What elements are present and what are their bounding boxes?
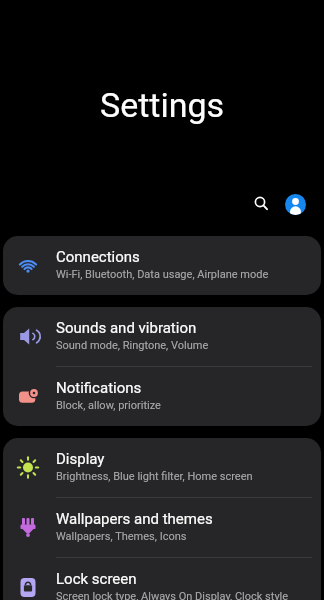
button[interactable]: Wallpapers and themes xyxy=(3,498,321,557)
button[interactable] xyxy=(285,194,306,215)
button[interactable]: Display xyxy=(3,438,321,497)
staticText: Wallpapers and themes xyxy=(56,510,213,528)
staticText: Block, allow, prioritize xyxy=(56,399,161,412)
staticText: Sound mode, Ringtone, Volume xyxy=(56,339,209,352)
staticText: Display xyxy=(56,450,105,468)
staticText: Sounds and vibration xyxy=(56,319,197,337)
button[interactable]: Notifications xyxy=(3,367,321,426)
staticText: Wallpapers, Themes, Icons xyxy=(56,530,187,543)
button[interactable]: Connections xyxy=(3,236,321,295)
staticText: Notifications xyxy=(56,379,142,397)
staticText: Settings xyxy=(100,85,225,125)
button[interactable] xyxy=(246,188,274,216)
staticText: Lock screen xyxy=(56,570,137,588)
button[interactable]: Lock screen xyxy=(3,558,321,600)
staticText: Connections xyxy=(56,248,140,266)
button[interactable]: Sounds and vibration xyxy=(3,307,321,366)
staticText: Brightness, Blue light filter, Home scre… xyxy=(56,470,253,483)
staticText: Screen lock type, Always On Display, Clo… xyxy=(56,590,289,600)
staticText: Wi-Fi, Bluetooth, Data usage, Airplane m… xyxy=(56,268,269,281)
